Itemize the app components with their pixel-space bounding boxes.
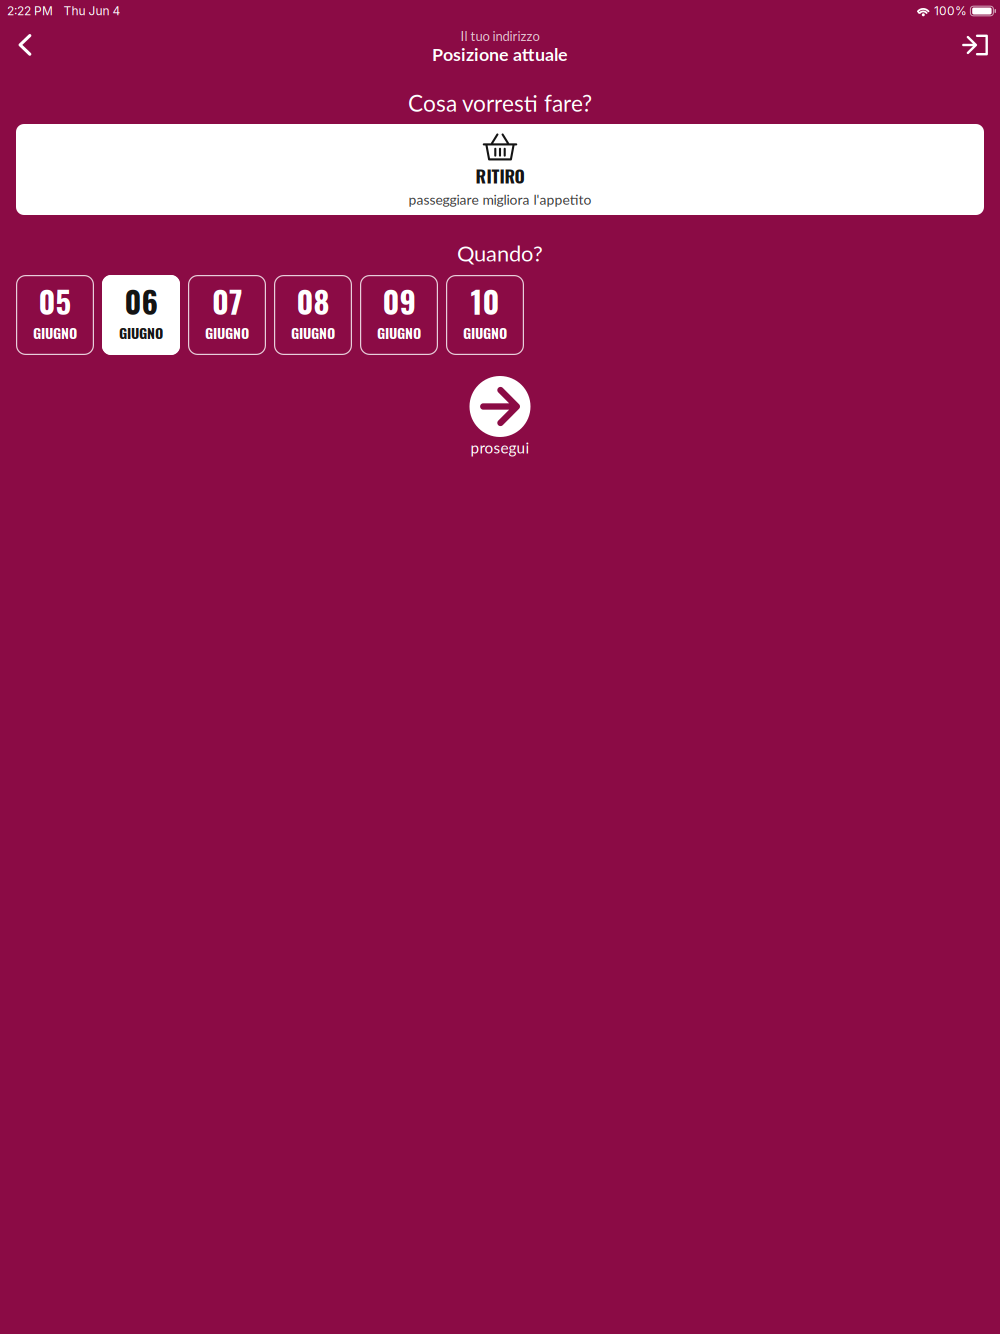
staticText: 05 — [38, 278, 71, 324]
button[interactable]: 06 — [102, 275, 180, 355]
button[interactable]: 05 — [16, 275, 94, 355]
button[interactable]: 09 — [360, 275, 438, 355]
staticText: Thu Jun 4 — [63, 4, 120, 18]
button[interactable]: 08 — [274, 275, 352, 355]
staticText: 2:22 PM — [7, 4, 53, 18]
button[interactable]: Sign in — [953, 23, 997, 67]
staticText: GIUGNO — [463, 322, 507, 343]
staticText: RITIRO — [475, 162, 524, 189]
staticText: Posizione attuale — [432, 43, 568, 65]
staticText: GIUGNO — [205, 322, 249, 343]
button[interactable]: prosegui — [469, 376, 530, 456]
staticText: GIUGNO — [119, 322, 163, 343]
staticText: passeggiare migliora l'appetito — [408, 191, 591, 208]
staticText: 08 — [296, 278, 329, 324]
staticText: GIUGNO — [377, 322, 421, 343]
staticText: 06 — [124, 278, 157, 324]
staticText: 10 — [470, 278, 499, 324]
staticText: 100% — [934, 4, 967, 18]
staticText: prosegui — [470, 438, 529, 457]
staticText: Cosa vorresti fare? — [408, 89, 592, 117]
staticText: GIUGNO — [291, 322, 335, 343]
staticText: Il tuo indirizzo — [460, 28, 539, 44]
staticText: Quando? — [457, 240, 543, 266]
button[interactable]: RITIRO — [16, 124, 984, 215]
staticText: 07 — [212, 278, 242, 324]
button[interactable]: 07 — [188, 275, 266, 355]
staticText: GIUGNO — [33, 322, 77, 343]
button[interactable]: 10 — [446, 275, 524, 355]
staticText: 09 — [382, 278, 415, 324]
button[interactable]: Back — [3, 23, 47, 67]
